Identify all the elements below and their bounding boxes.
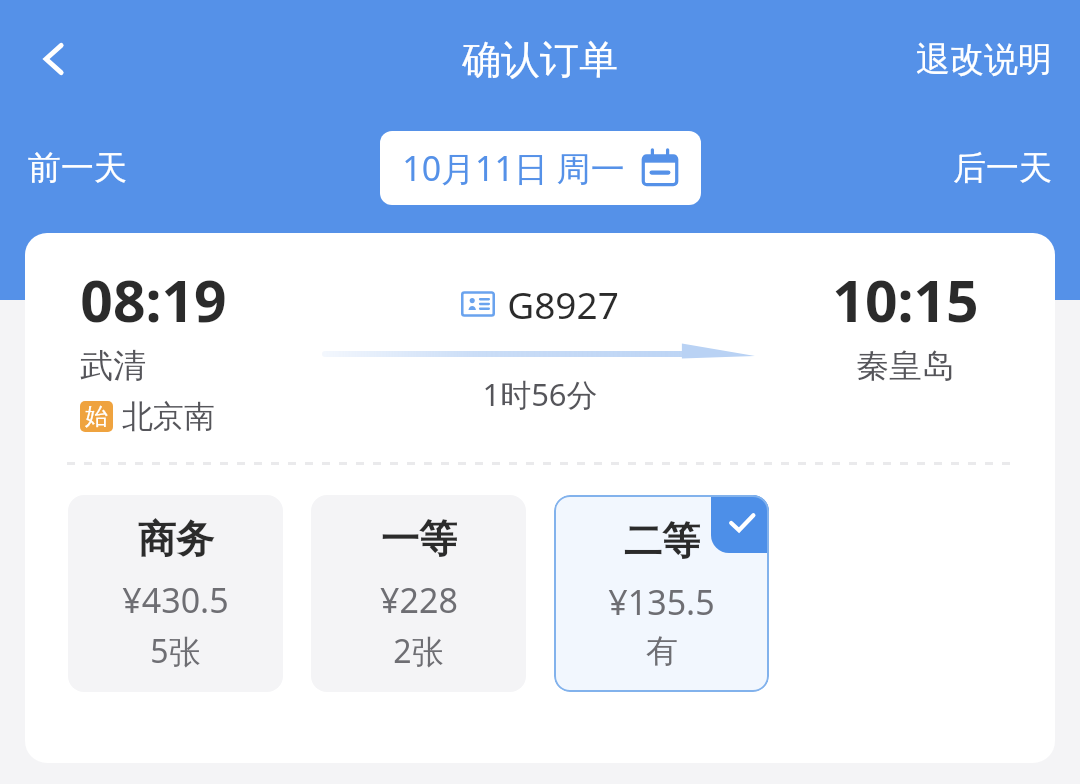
staticText: ¥135.5 xyxy=(608,579,715,625)
button[interactable]: 10月11日 周一 xyxy=(380,131,701,205)
button[interactable]: 后一天 xyxy=(925,135,1080,201)
staticText: 确认订单 xyxy=(462,35,618,84)
staticText: 前一天 xyxy=(28,147,127,189)
staticText: 商务 xyxy=(138,515,214,563)
button[interactable]: 二等 xyxy=(554,495,769,692)
button[interactable]: 一等 xyxy=(311,495,526,692)
staticText: 10月11日 周一 xyxy=(402,145,625,191)
button[interactable]: 前一天 xyxy=(0,135,155,201)
staticText: 有 xyxy=(646,631,678,671)
staticText: 二等 xyxy=(624,517,700,565)
staticText: 5张 xyxy=(150,629,201,673)
staticText: 北京南 xyxy=(122,397,215,436)
staticText: G8927 xyxy=(507,279,619,329)
button[interactable]: 退改说明 xyxy=(888,26,1080,93)
staticText: ¥430.5 xyxy=(122,577,229,623)
button[interactable]: Back xyxy=(22,27,86,91)
staticText: 10:15 xyxy=(832,261,979,339)
staticText: 秦皇岛 xyxy=(856,345,955,387)
staticText: 08:19 xyxy=(80,261,227,339)
staticText: 退改说明 xyxy=(916,38,1052,81)
staticText: 一等 xyxy=(381,515,457,563)
staticText: 后一天 xyxy=(953,147,1052,189)
staticText: 武清 xyxy=(80,345,146,387)
staticText: 1时56分 xyxy=(482,373,598,415)
button[interactable]: 商务 xyxy=(68,495,283,692)
staticText: 2张 xyxy=(393,629,444,673)
staticText: 始 xyxy=(85,402,108,431)
staticText: ¥228 xyxy=(380,577,458,623)
